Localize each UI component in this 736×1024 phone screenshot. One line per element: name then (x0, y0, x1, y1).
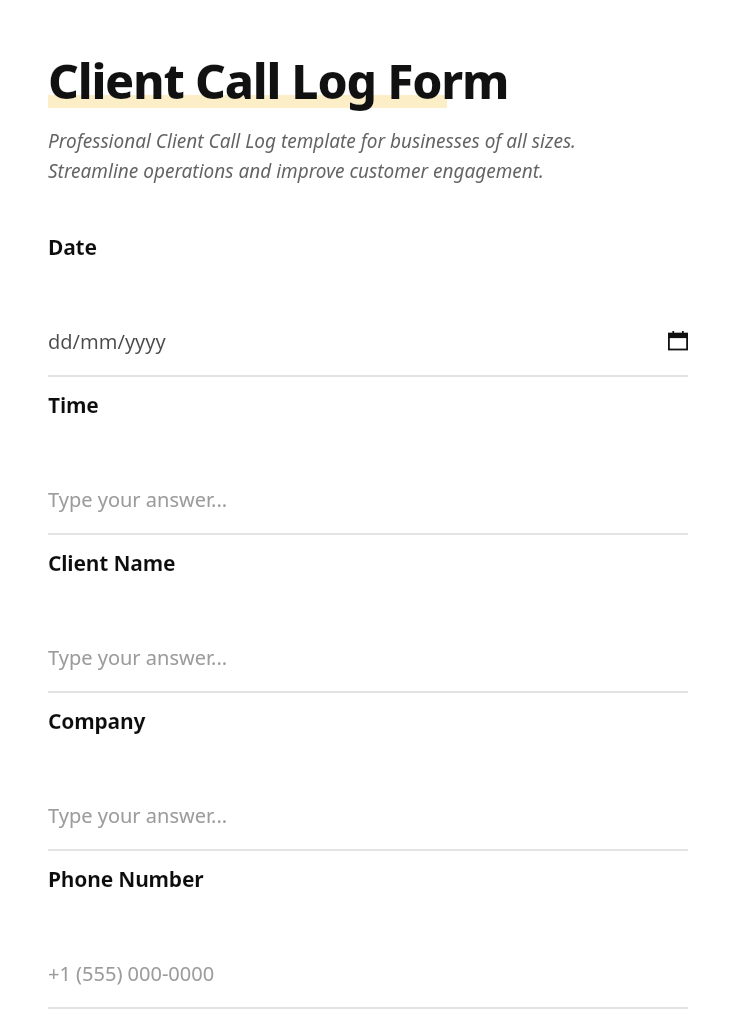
staticText: +1 (555) 000-0000 (48, 960, 215, 987)
button[interactable]: Time (48, 377, 688, 535)
button[interactable]: Phone Number (48, 851, 688, 1009)
staticText: Client Name (48, 549, 176, 578)
staticText: Type your answer... (48, 802, 228, 829)
staticText: Client Call Log Form (48, 48, 509, 113)
staticText: Professional Client Call Log template fo… (48, 128, 576, 183)
staticText: Type your answer... (48, 644, 228, 671)
staticText: Phone Number (48, 865, 204, 894)
staticText: Type your answer... (48, 486, 228, 513)
staticText: Date (48, 233, 97, 262)
staticText: Company (48, 707, 146, 736)
button[interactable]: Client Name (48, 535, 688, 693)
button[interactable]: Pick a date (668, 331, 688, 351)
staticText: dd/mm/yyyy (48, 328, 166, 355)
staticText: Time (48, 391, 99, 420)
button[interactable]: Date (48, 219, 688, 377)
button[interactable]: Company (48, 693, 688, 851)
